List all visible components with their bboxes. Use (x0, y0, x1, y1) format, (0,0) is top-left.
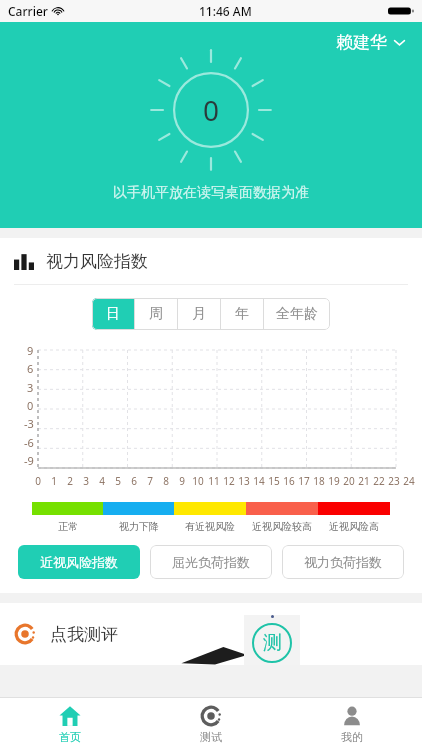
button[interactable]: 日 (92, 298, 134, 330)
staticText: 22 (373, 474, 385, 488)
staticText: 10 (192, 474, 204, 488)
button[interactable]: 月 (178, 298, 220, 330)
staticText: 视力负荷指数 (304, 554, 382, 570)
staticText: 正常 (58, 520, 78, 533)
staticText: 19 (328, 474, 340, 488)
button[interactable]: 视力负荷指数 (282, 545, 404, 579)
staticText: 0 (203, 91, 220, 129)
staticText: 年 (235, 305, 249, 323)
staticText: 14 (253, 474, 265, 488)
staticText: 4 (99, 474, 105, 488)
staticText: 9 (27, 343, 34, 358)
staticText: 测 (263, 631, 282, 655)
staticText: 近视风险指数 (40, 554, 118, 570)
staticText: -6 (24, 435, 34, 450)
staticText: 11:46 AM (199, 3, 252, 19)
staticText: 我的 (341, 730, 363, 744)
staticText: 近视风险较高 (252, 520, 312, 533)
staticText: 月 (192, 305, 206, 323)
staticText: Carrier (8, 3, 48, 19)
button[interactable]: 周 (135, 298, 177, 330)
staticText: 视力风险指数 (46, 251, 148, 272)
staticText: 13 (238, 474, 250, 488)
staticText: 17 (298, 474, 310, 488)
button[interactable]: 年 (221, 298, 263, 330)
staticText: 9 (179, 474, 185, 488)
staticText: -3 (24, 416, 34, 431)
staticText: 24 (403, 474, 415, 488)
staticText: 屈光负荷指数 (172, 554, 250, 570)
staticText: 首页 (59, 730, 81, 744)
staticText: 23 (388, 474, 400, 488)
staticText: 有近视风险 (185, 520, 235, 533)
staticText: 视力下降 (119, 520, 159, 533)
staticText: 6 (131, 474, 137, 488)
staticText: 20 (343, 474, 355, 488)
staticText: 8 (163, 474, 169, 488)
staticText: 7 (147, 474, 153, 488)
staticText: 近视风险高 (329, 520, 379, 533)
staticText: 赖建华 (336, 32, 387, 53)
staticText: 日 (106, 305, 120, 323)
staticText: 测试 (200, 730, 222, 744)
button[interactable]: 近视风险指数 (18, 545, 140, 579)
staticText: 6 (27, 361, 34, 376)
staticText: 2 (67, 474, 73, 488)
button[interactable]: 点我测评 (0, 603, 422, 665)
button[interactable]: 首页 (0, 698, 140, 750)
staticText: 0 (27, 398, 34, 413)
staticText: 21 (358, 474, 370, 488)
staticText: 16 (283, 474, 295, 488)
staticText: -9 (24, 453, 34, 468)
button[interactable]: 赖建华 (332, 28, 410, 57)
staticText: 0 (35, 474, 41, 488)
staticText: 12 (223, 474, 235, 488)
staticText: 11 (208, 474, 220, 488)
button[interactable]: 全年龄 (264, 298, 330, 330)
staticText: 5 (115, 474, 121, 488)
button[interactable]: 我的 (281, 698, 422, 750)
staticText: 3 (83, 474, 89, 488)
staticText: 1 (51, 474, 57, 488)
staticText: 15 (268, 474, 280, 488)
staticText: 点我测评 (50, 624, 118, 645)
staticText: 周 (149, 305, 163, 323)
button[interactable]: 测试 (140, 698, 281, 750)
staticText: 以手机平放在读写桌面数据为准 (113, 184, 309, 202)
staticText: 全年龄 (276, 305, 318, 323)
staticText: 18 (313, 474, 325, 488)
button[interactable]: 屈光负荷指数 (150, 545, 272, 579)
staticText: 3 (27, 380, 34, 395)
